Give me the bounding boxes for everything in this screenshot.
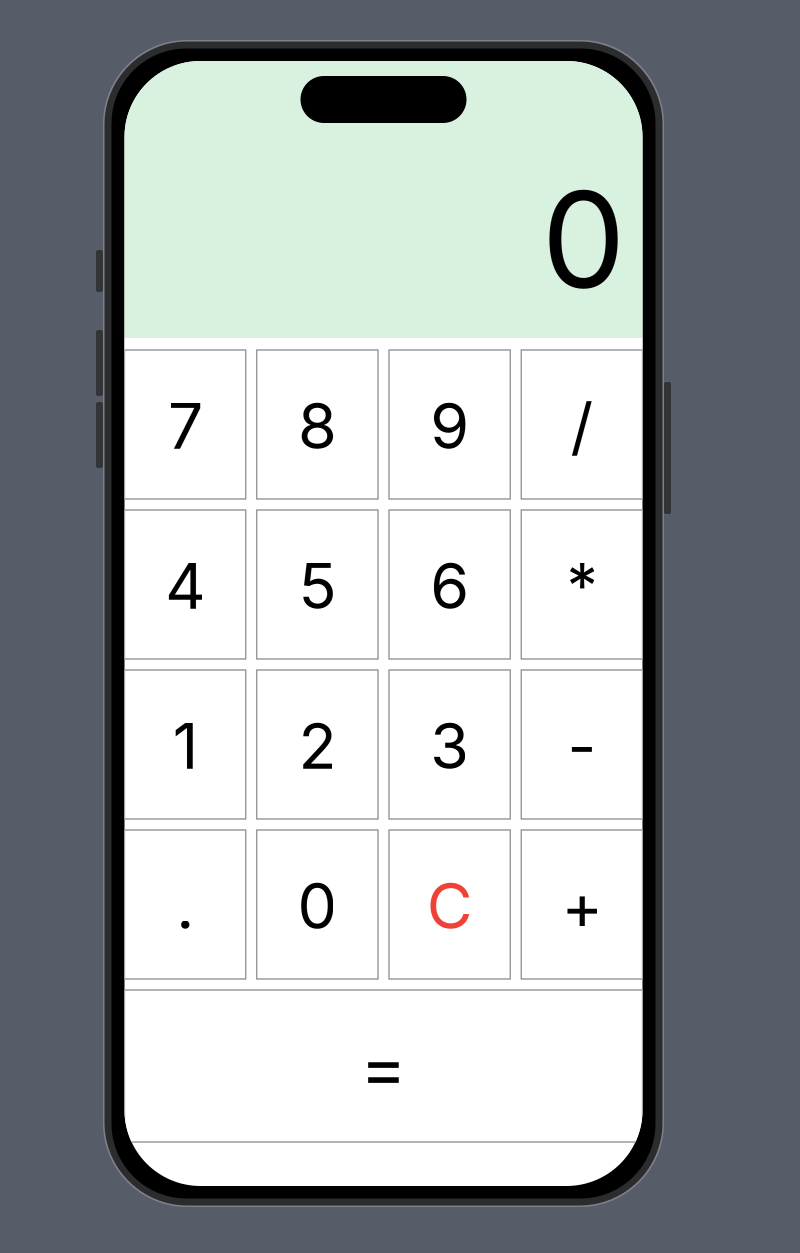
staticText: 2 bbox=[298, 708, 336, 784]
button[interactable]: 1 bbox=[124, 670, 246, 819]
button[interactable]: Divide bbox=[521, 350, 642, 499]
button[interactable]: Add bbox=[521, 830, 642, 979]
button[interactable]: 8 bbox=[257, 350, 378, 499]
button[interactable]: 5 bbox=[257, 510, 378, 659]
staticText: 3 bbox=[430, 708, 469, 784]
staticText: / bbox=[570, 388, 593, 464]
staticText: 7 bbox=[168, 388, 203, 464]
staticText: 4 bbox=[165, 548, 205, 624]
button[interactable]: 3 bbox=[389, 670, 510, 819]
staticText: + bbox=[561, 868, 602, 944]
button[interactable]: Equals bbox=[124, 990, 642, 1142]
button[interactable]: 4 bbox=[124, 510, 246, 659]
staticText: = bbox=[360, 1025, 406, 1109]
staticText: . bbox=[176, 868, 194, 944]
staticText: C bbox=[427, 868, 473, 944]
staticText: 6 bbox=[430, 548, 469, 624]
staticText: 0 bbox=[297, 868, 337, 944]
staticText: - bbox=[567, 708, 596, 784]
button[interactable]: 2 bbox=[257, 670, 378, 819]
button[interactable]: 6 bbox=[389, 510, 510, 659]
button[interactable]: 0 bbox=[257, 830, 378, 979]
staticText: 5 bbox=[298, 548, 336, 624]
staticText: * bbox=[566, 548, 597, 624]
staticText: 8 bbox=[298, 388, 337, 464]
staticText: 0 bbox=[541, 159, 625, 320]
button[interactable]: 9 bbox=[389, 350, 510, 499]
button[interactable]: Subtract bbox=[521, 670, 642, 819]
staticText: 1 bbox=[173, 708, 198, 784]
button[interactable]: Decimal point bbox=[124, 830, 246, 979]
button[interactable]: 7 bbox=[124, 350, 246, 499]
button[interactable]: Clear bbox=[389, 830, 510, 979]
button[interactable]: Multiply bbox=[521, 510, 642, 659]
staticText: 9 bbox=[430, 388, 469, 464]
